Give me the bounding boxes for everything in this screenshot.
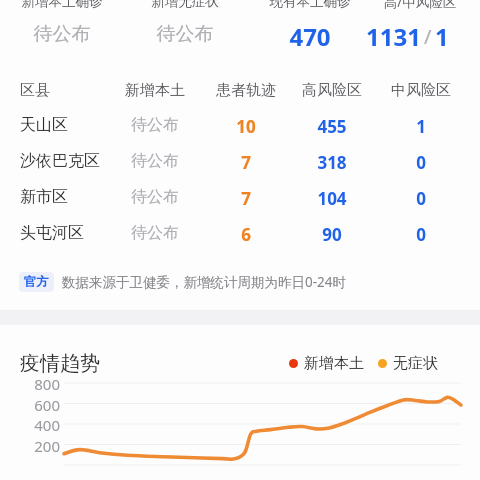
staticText: 新增无症状 [85, 0, 285, 10]
staticText: 高风险区 [252, 81, 412, 100]
button[interactable]: 官方 [19, 272, 347, 292]
staticText: 数据来源于卫健委，新增统计周期为昨日0-24时 [62, 273, 347, 291]
staticText: 区县 [20, 81, 50, 100]
staticText: 官方 [24, 274, 49, 290]
button[interactable]: 天山区 [0, 112, 480, 142]
staticText: 318 [252, 151, 412, 174]
button[interactable]: 新增本土 [289, 354, 438, 373]
staticText: 400 [14, 415, 60, 435]
staticText: 470 [210, 20, 410, 53]
staticText: 1131 [366, 20, 421, 53]
staticText: 沙依巴克区 [20, 151, 100, 171]
staticText: 6 [166, 223, 326, 246]
staticText: 800 [14, 374, 60, 394]
staticText: 待公布 [85, 22, 285, 46]
staticText: 无症状 [393, 354, 438, 373]
staticText: / [424, 23, 432, 50]
staticText: 待公布 [75, 115, 235, 135]
staticText: 高/中风险区 [320, 0, 480, 11]
staticText: 7 [166, 151, 326, 174]
staticText: 待公布 [75, 187, 235, 207]
button[interactable]: 区县 [0, 78, 480, 108]
button[interactable]: 新市区 [0, 184, 480, 214]
staticText: 天山区 [20, 115, 68, 135]
staticText: 0 [341, 223, 480, 246]
staticText: 10 [166, 115, 326, 138]
staticText: 455 [252, 115, 412, 138]
staticText: 新市区 [20, 187, 68, 207]
staticText: 待公布 [0, 22, 162, 46]
staticText: 患者轨迹 [166, 81, 326, 100]
staticText: 现有本土确诊 [210, 0, 410, 10]
staticText: 中风险区 [341, 81, 480, 100]
staticText: 疫情趋势 [20, 351, 100, 376]
staticText: 待公布 [75, 151, 235, 171]
button[interactable]: 头屯河区 [0, 220, 480, 250]
staticText: 新增本土确诊 [0, 0, 162, 10]
staticText: 新增本土 [304, 354, 364, 373]
staticText: 1 [435, 20, 449, 53]
staticText: 0 [341, 151, 480, 174]
staticText: 7 [166, 187, 326, 210]
button[interactable]: 沙依巴克区 [0, 148, 480, 178]
staticText: 头屯河区 [20, 223, 84, 243]
staticText: 200 [14, 436, 60, 456]
staticText: 0 [341, 187, 480, 210]
staticText: 90 [252, 223, 412, 246]
staticText: 1 [341, 115, 480, 138]
staticText: 104 [252, 187, 412, 210]
staticText: 待公布 [75, 223, 235, 243]
staticText: 600 [14, 395, 60, 415]
staticText: 新增本土 [75, 81, 235, 100]
